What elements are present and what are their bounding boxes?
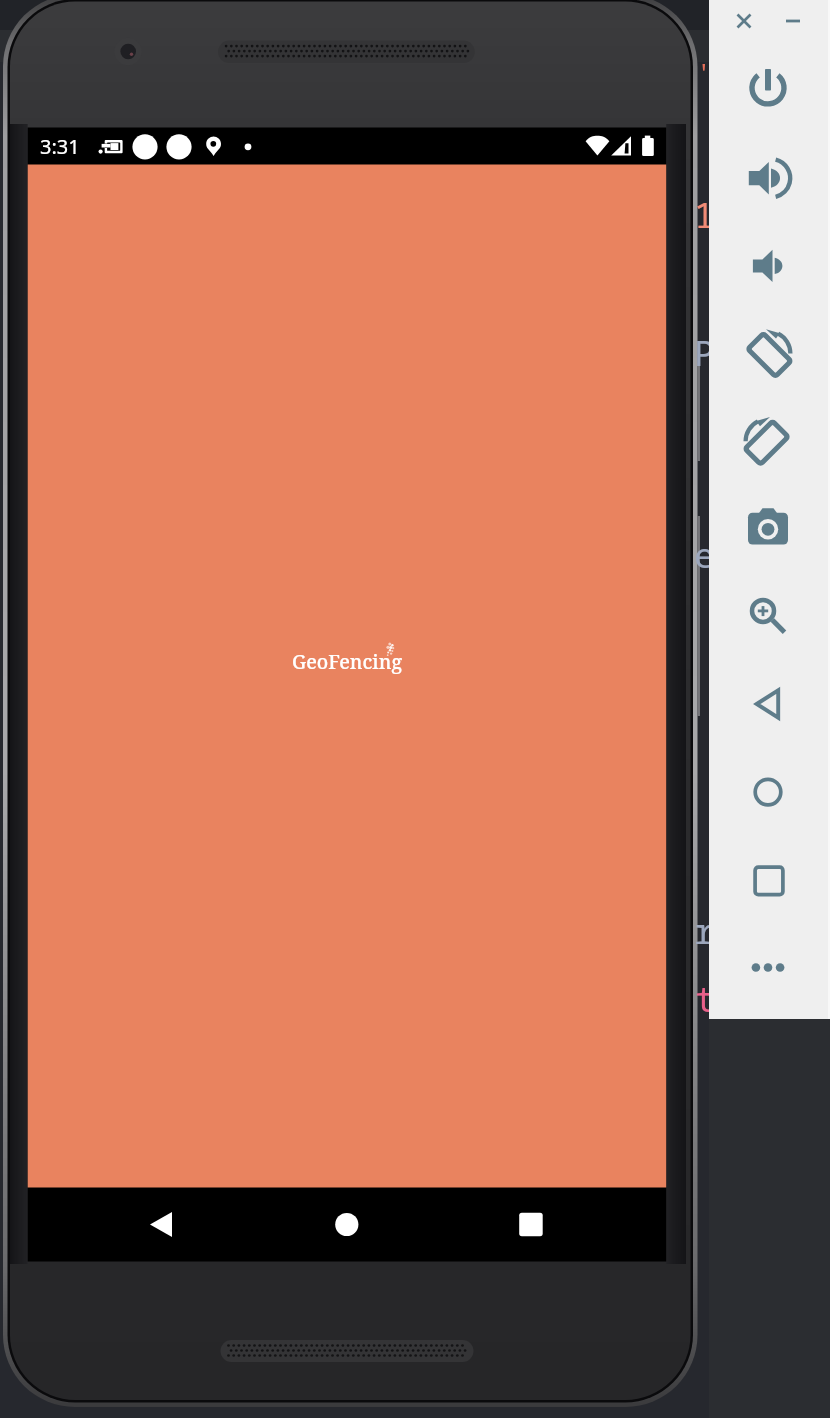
staticText: '	[696, 54, 712, 89]
button[interactable]: Take screenshot	[709, 489, 828, 569]
button[interactable]: Home	[312, 1190, 382, 1260]
staticText: 3:31	[40, 133, 80, 160]
button[interactable]: Minimize	[779, 0, 828, 43]
staticText: e	[694, 532, 715, 578]
button[interactable]: Zoom	[709, 577, 828, 657]
button[interactable]: Volume down	[709, 226, 828, 306]
staticText: GeoFencing	[292, 648, 403, 675]
button[interactable]: Rotate right	[709, 401, 828, 481]
button[interactable]: Volume up	[709, 138, 828, 218]
button[interactable]: Recent apps	[496, 1190, 566, 1260]
staticText: 1	[694, 192, 715, 238]
button[interactable]: Back	[126, 1190, 196, 1260]
button[interactable]: Rotate left	[709, 314, 828, 394]
button[interactable]: Back	[709, 664, 828, 744]
button[interactable]: Power	[709, 51, 828, 131]
button[interactable]: Home	[709, 752, 828, 832]
button[interactable]: More	[709, 928, 828, 1008]
button[interactable]: Close	[709, 0, 779, 43]
staticText: r	[694, 908, 715, 954]
button[interactable]: Overview	[709, 840, 828, 920]
staticText: t	[695, 976, 716, 1022]
staticText: P	[694, 330, 715, 376]
button[interactable]: GeoFencing	[28, 165, 667, 1188]
